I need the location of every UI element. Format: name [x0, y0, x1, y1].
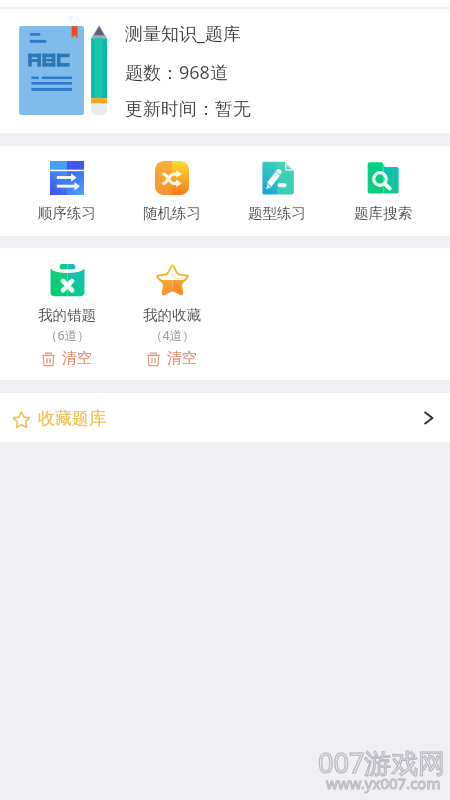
- button[interactable]: 题库搜索: [330, 161, 436, 222]
- staticText: 我的收藏: [143, 306, 201, 324]
- staticText: www.yx007.com: [326, 773, 441, 793]
- staticText: 007游戏网: [318, 744, 446, 781]
- button[interactable]: 题型练习: [224, 161, 330, 222]
- button[interactable]: 收藏题库: [0, 393, 450, 442]
- staticText: 随机练习: [143, 204, 201, 222]
- staticText: 题数：968道: [125, 60, 228, 85]
- button[interactable]: 顺序练习: [14, 161, 119, 222]
- staticText: 我的错题: [38, 306, 96, 324]
- staticText: 清空: [62, 349, 92, 368]
- button[interactable]: 我的收藏: [143, 262, 201, 344]
- button[interactable]: 随机练习: [119, 161, 224, 222]
- button[interactable]: 清空: [143, 347, 201, 370]
- staticText: （6道）: [45, 327, 90, 344]
- button[interactable]: 我的错题: [38, 262, 96, 344]
- staticText: 题型练习: [248, 204, 306, 222]
- staticText: 更新时间：暂无: [125, 98, 251, 121]
- staticText: 清空: [167, 349, 197, 368]
- staticText: 题库搜索: [354, 204, 412, 222]
- staticText: （4道）: [150, 327, 195, 344]
- staticText: 测量知识_题库: [125, 21, 241, 46]
- button[interactable]: 测量知识_题库: [0, 9, 450, 133]
- staticText: 顺序练习: [38, 204, 96, 222]
- button[interactable]: 清空: [38, 347, 96, 370]
- staticText: 收藏题库: [38, 408, 106, 429]
